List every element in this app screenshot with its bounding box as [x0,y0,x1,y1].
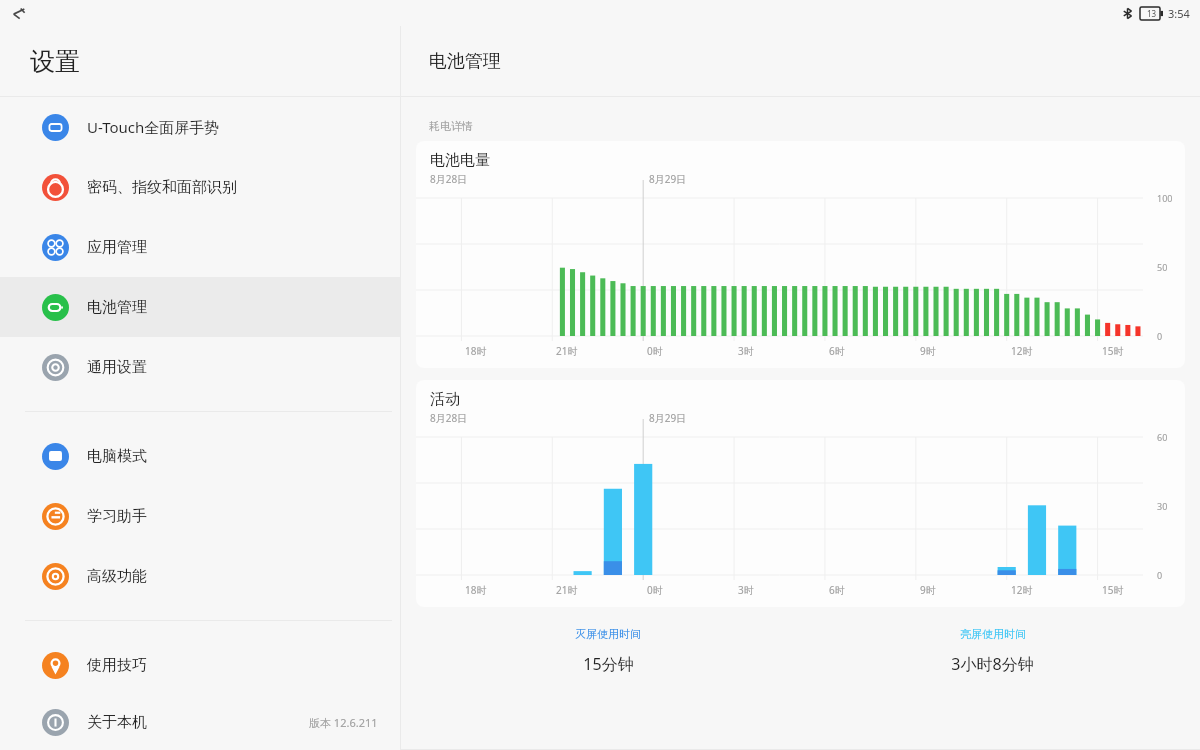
staticText: 0 [1157,330,1163,342]
staticText: 8月29日 [649,172,687,186]
button[interactable]: 电池管理 [0,277,400,337]
staticText: 电脑模式 [87,447,378,466]
staticText: 6时 [829,583,845,597]
staticText: 电池管理 [87,298,378,317]
staticText: 3时 [738,344,754,358]
staticText: 8月28日 [430,411,468,425]
staticText: 8月28日 [430,172,468,186]
staticText: 3时 [738,583,754,597]
staticText: 通用设置 [87,358,378,377]
staticText: 电池电量 [430,151,490,170]
button[interactable]: 高级功能 [0,546,400,606]
staticText: 0时 [647,583,663,597]
button[interactable]: U-Touch全面屏手势 [0,97,400,157]
staticText: 21时 [556,583,578,597]
staticText: 灭屏使用时间 [575,627,641,641]
staticText: 50 [1157,261,1168,273]
staticText: 18时 [465,344,487,358]
staticText: 3:54 [1168,6,1190,21]
staticText: U-Touch全面屏手势 [87,117,378,137]
staticText: 9时 [920,344,936,358]
button[interactable]: 学习助手 [0,486,400,546]
staticText: 18时 [465,583,487,597]
staticText: 设置 [30,46,80,77]
staticText: 版本 12.6.211 [309,715,378,730]
staticText: 耗电详情 [429,119,473,133]
button[interactable]: 活动 [416,380,1185,607]
staticText: 60 [1157,431,1168,443]
staticText: 密码、指纹和面部识别 [87,178,378,197]
button[interactable]: 电池电量 [416,141,1185,368]
button[interactable]: 灭屏使用时间 [416,627,800,675]
staticText: 高级功能 [87,567,378,586]
button[interactable]: 电脑模式 [0,426,400,486]
staticText: 0时 [647,344,663,358]
staticText: 12时 [1011,344,1033,358]
staticText: 电池管理 [429,50,501,73]
staticText: 21时 [556,344,578,358]
staticText: 学习助手 [87,507,378,526]
staticText: 应用管理 [87,238,378,257]
button[interactable]: 使用技巧 [0,635,400,695]
staticText: 15时 [1102,344,1124,358]
button[interactable]: 关于本机 [0,695,400,750]
staticText: 9时 [920,583,936,597]
staticText: 15时 [1102,583,1124,597]
staticText: 6时 [829,344,845,358]
staticText: 使用技巧 [87,656,378,675]
button[interactable]: 密码、指纹和面部识别 [0,157,400,217]
staticText: 亮屏使用时间 [960,627,1026,641]
staticText: 100 [1157,192,1173,204]
staticText: 活动 [430,390,460,409]
staticText: 12时 [1011,583,1033,597]
button[interactable]: 应用管理 [0,217,400,277]
button[interactable]: 通用设置 [0,337,400,397]
staticText: 30 [1157,500,1168,512]
staticText: 8月29日 [649,411,687,425]
button[interactable]: 亮屏使用时间 [800,627,1185,675]
staticText: 关于本机 [87,713,309,732]
staticText: 15分钟 [583,653,634,675]
staticText: 3小时8分钟 [951,653,1034,675]
staticText: 0 [1157,569,1163,581]
staticText: 13 [1147,8,1157,19]
